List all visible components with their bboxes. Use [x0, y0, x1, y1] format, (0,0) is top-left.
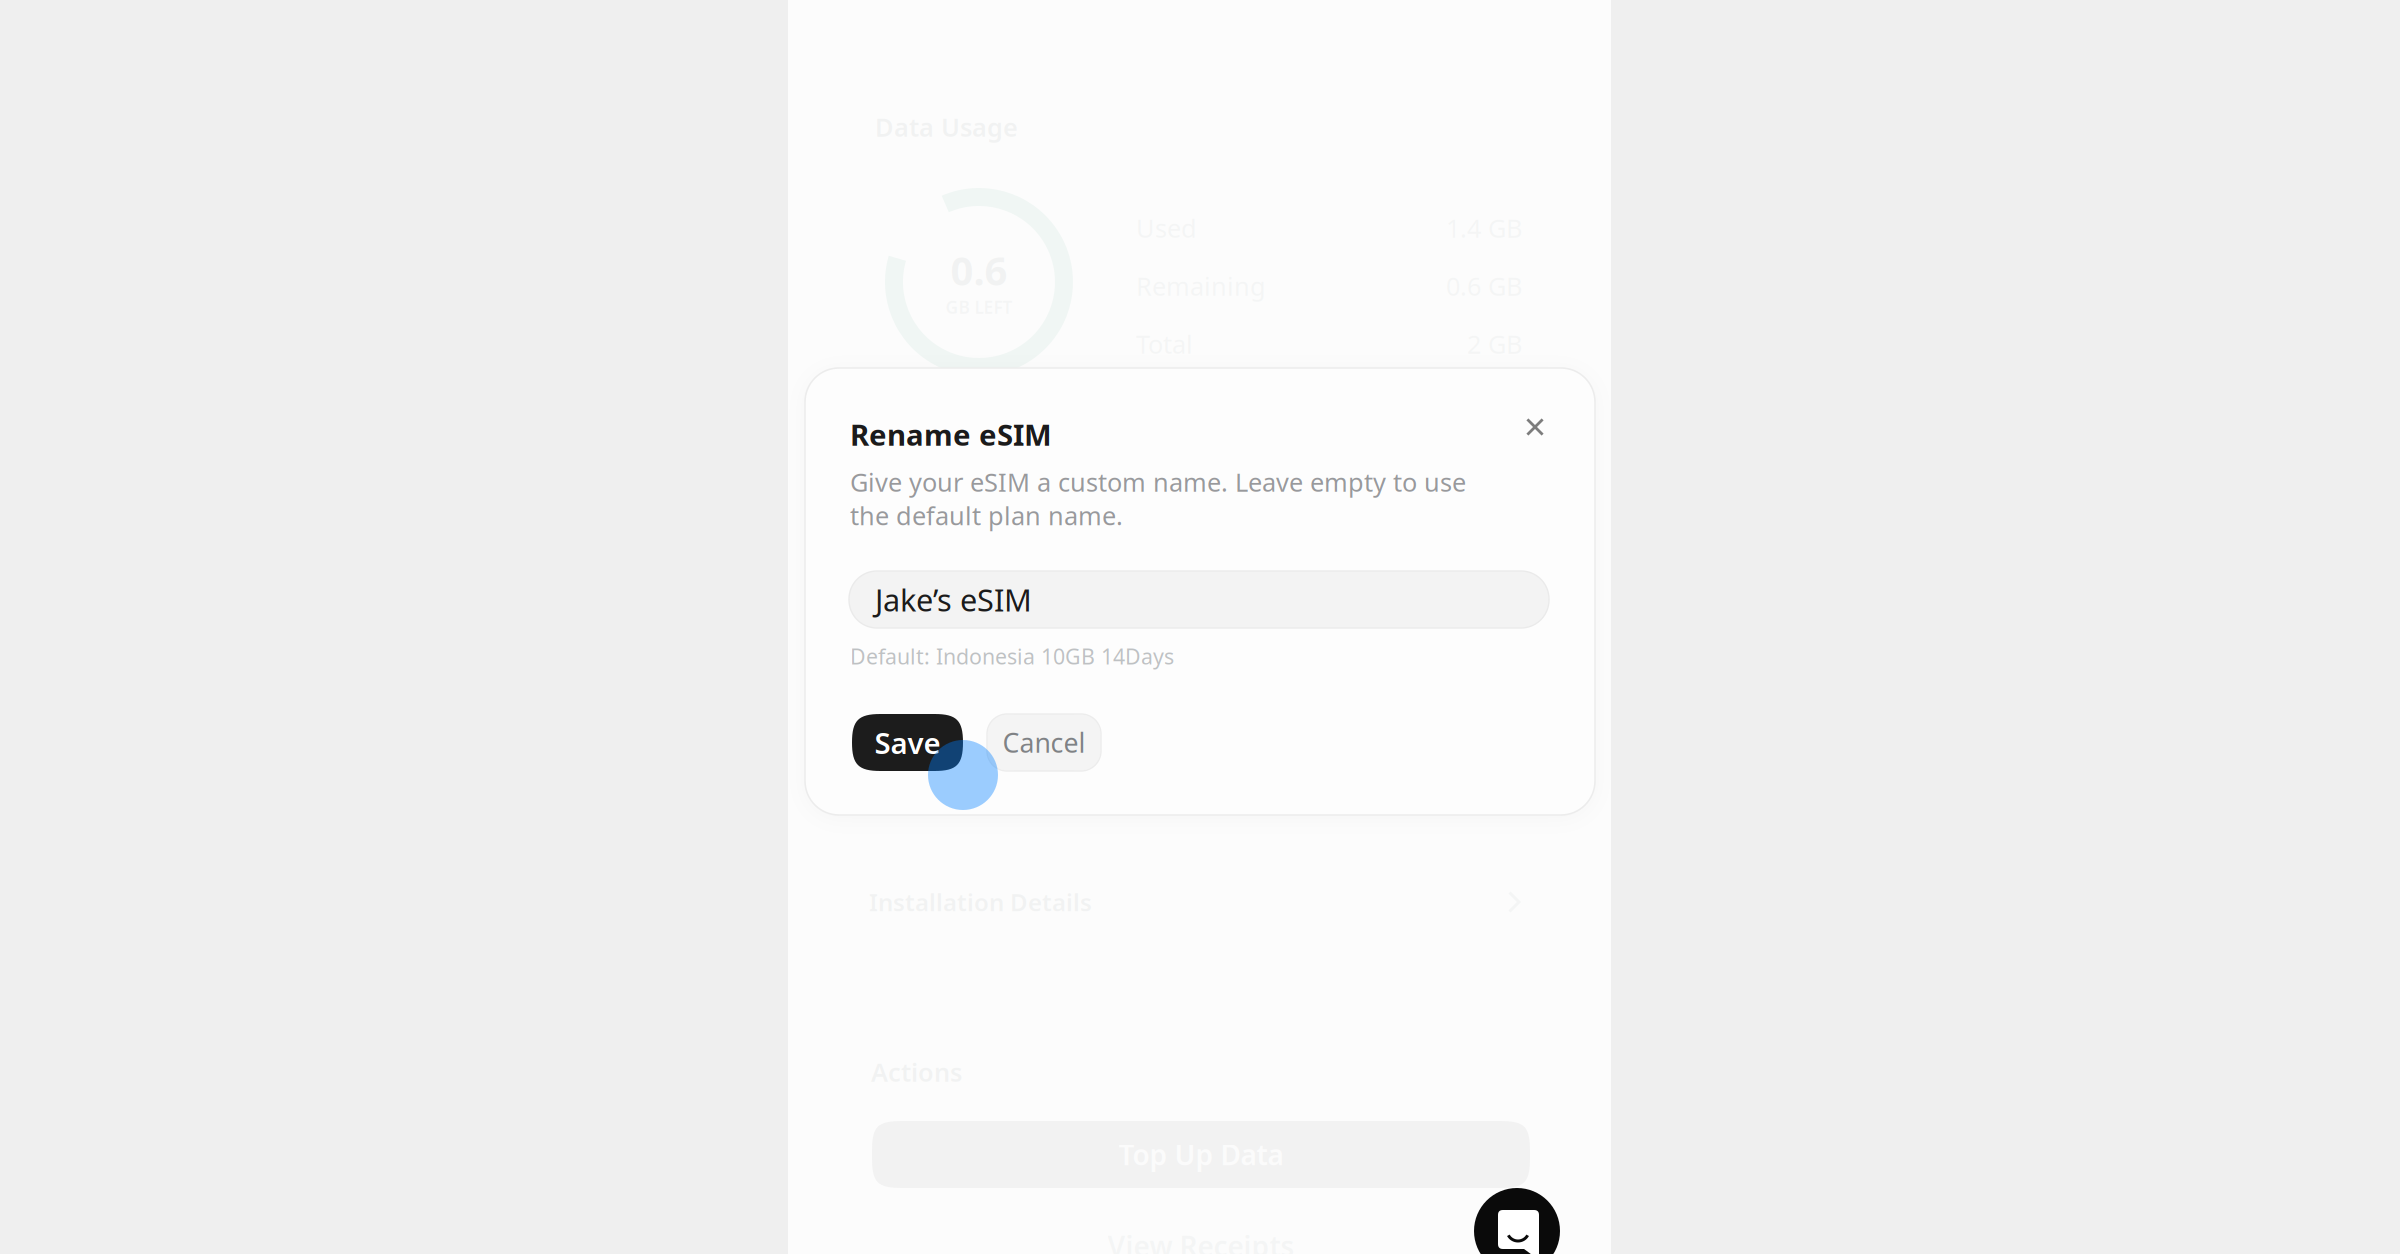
button[interactable]: Cancel [987, 714, 1101, 771]
button[interactable]: View Receipts [872, 1228, 1530, 1254]
button[interactable]: Open support chat [1474, 1188, 1560, 1254]
staticText: Installation Details [869, 886, 1092, 918]
staticText: Default: Indonesia 10GB 14Days [850, 642, 1174, 670]
button[interactable]: Close [1513, 405, 1557, 449]
staticText: View Receipts [1107, 1227, 1294, 1254]
staticText: Rename eSIM [850, 415, 1052, 454]
staticText: Jake’s eSIM [875, 579, 1032, 620]
staticText: Data Usage [875, 110, 1018, 144]
staticText: Actions [871, 1055, 962, 1089]
staticText: 0.6 [950, 243, 1007, 296]
staticText: Top Up Data [1118, 1136, 1283, 1173]
button[interactable]: Save [852, 714, 963, 771]
staticText: Cancel [1002, 725, 1085, 760]
staticText: Save [874, 723, 940, 762]
staticText: Give your eSIM a custom name. Leave empt… [850, 465, 1466, 532]
